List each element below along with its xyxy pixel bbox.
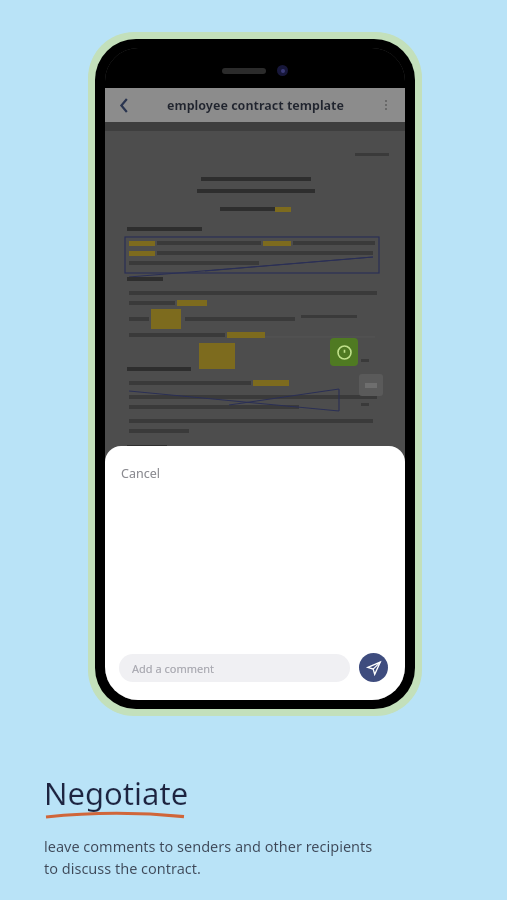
button[interactable]: Send bbox=[359, 653, 388, 682]
staticText: Add a comment bbox=[132, 661, 214, 676]
staticText: employee contract template bbox=[167, 97, 344, 114]
button[interactable]: More options bbox=[375, 94, 397, 116]
button[interactable]: Add a comment bbox=[119, 654, 350, 682]
button[interactable]: Back bbox=[111, 92, 137, 118]
button[interactable]: Approve bbox=[330, 338, 358, 366]
button[interactable]: Cancel bbox=[121, 465, 160, 482]
staticText: Negotiate bbox=[44, 772, 189, 814]
staticText: leave comments to senders and other reci… bbox=[44, 836, 373, 878]
